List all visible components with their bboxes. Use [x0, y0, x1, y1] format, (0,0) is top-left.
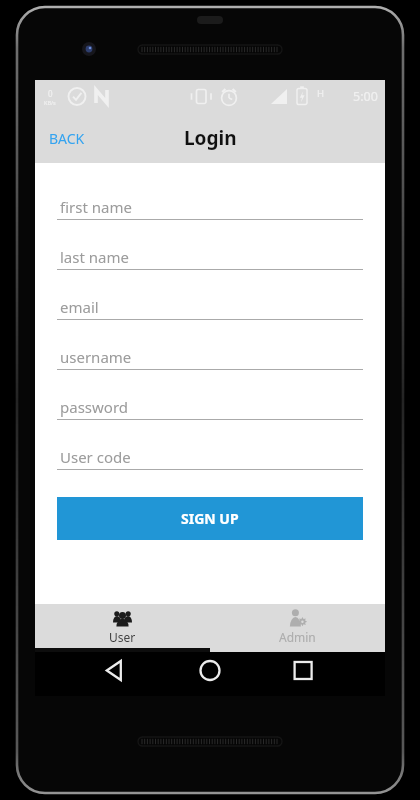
staticText: last name — [60, 247, 129, 267]
staticText: Login — [184, 125, 237, 151]
button[interactable]: User — [35, 604, 210, 648]
staticText: Admin — [279, 629, 316, 645]
staticText: H — [317, 87, 325, 100]
staticText: User — [109, 629, 136, 645]
button[interactable]: username — [57, 333, 363, 383]
button[interactable]: last name — [57, 233, 363, 283]
button[interactable]: User code — [57, 433, 363, 483]
staticText: SIGN UP — [181, 509, 239, 528]
staticText: email — [60, 297, 99, 317]
staticText: 5:00 — [353, 88, 378, 105]
staticText: first name — [60, 197, 132, 217]
button[interactable]: first name — [57, 183, 363, 233]
button[interactable]: email — [57, 283, 363, 333]
other: Admin — [288, 608, 307, 627]
button[interactable]: SIGN UP — [57, 497, 363, 540]
button[interactable]: BACK — [40, 121, 94, 156]
button[interactable]: password — [57, 383, 363, 433]
staticText: username — [60, 347, 132, 367]
staticText: KB/s — [44, 99, 56, 106]
staticText: BACK — [49, 129, 85, 148]
staticText: User code — [60, 447, 131, 467]
staticText: 0 — [48, 88, 53, 99]
button[interactable]: Admin — [210, 604, 385, 648]
staticText: password — [60, 397, 128, 417]
other: User — [113, 608, 132, 627]
